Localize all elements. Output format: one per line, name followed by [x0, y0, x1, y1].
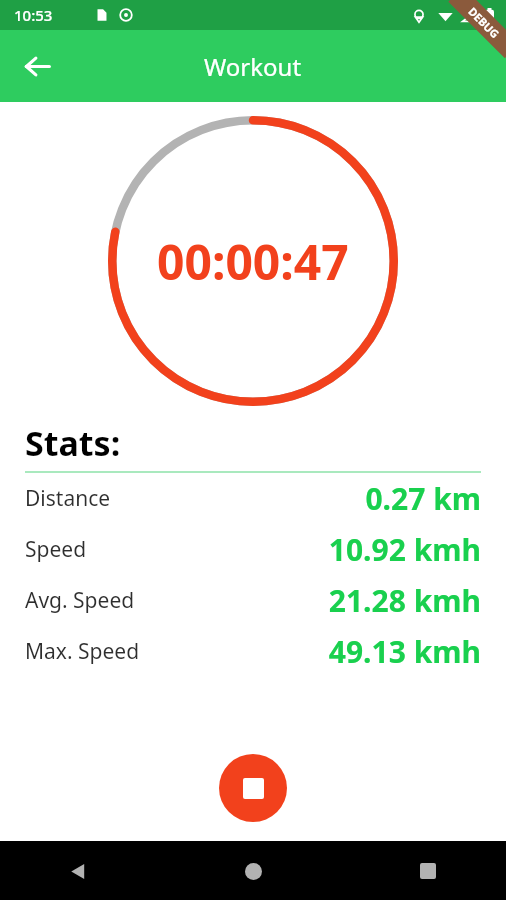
staticText: Avg. Speed	[25, 586, 135, 615]
staticText: Stats:	[25, 420, 121, 466]
staticText: Distance	[25, 484, 111, 513]
button[interactable]: Distance	[25, 473, 481, 524]
button[interactable]: Stop workout	[219, 754, 287, 822]
staticText: 0.27 km	[111, 478, 481, 519]
button[interactable]: Avg. Speed	[25, 575, 481, 626]
button[interactable]: Back	[54, 847, 102, 895]
staticText: 49.13 kmh	[140, 631, 481, 672]
staticText: 10:53	[14, 5, 53, 25]
staticText: Speed	[25, 535, 87, 564]
staticText: DEBUG	[465, 4, 503, 41]
button[interactable]: Home	[229, 847, 277, 895]
staticText: Max. Speed	[25, 637, 140, 666]
button[interactable]: Speed	[25, 524, 481, 575]
staticText: 21.28 kmh	[135, 580, 481, 621]
staticText: 00:00:47	[157, 229, 349, 294]
staticText: 10.92 kmh	[87, 529, 481, 570]
button[interactable]: Recent apps	[404, 847, 452, 895]
button[interactable]: Back	[11, 40, 63, 92]
button[interactable]: Max. Speed	[25, 626, 481, 677]
staticText: Workout	[204, 50, 302, 83]
